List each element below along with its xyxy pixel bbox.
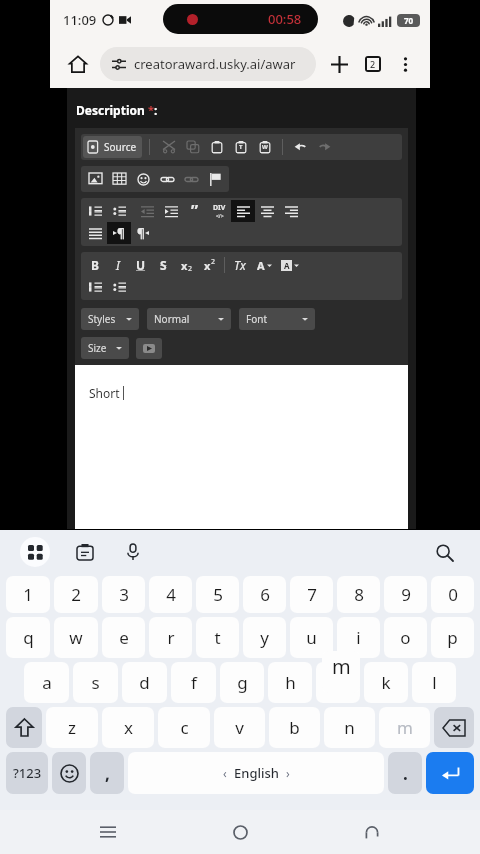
button[interactable]: Align left xyxy=(231,200,255,222)
button[interactable]: Emoji xyxy=(131,168,155,190)
button[interactable]: 0 xyxy=(431,576,474,613)
button[interactable]: x xyxy=(102,707,154,748)
button[interactable]: a xyxy=(24,662,69,703)
button[interactable]: Period xyxy=(388,752,422,794)
button[interactable]: 4 xyxy=(149,576,192,613)
button[interactable]: r xyxy=(149,617,192,658)
button[interactable]: Text color xyxy=(251,254,277,276)
button[interactable]: o xyxy=(384,617,427,658)
button[interactable]: Copy xyxy=(181,136,205,158)
button[interactable]: i xyxy=(337,617,380,658)
button[interactable]: 9 xyxy=(384,576,427,613)
button[interactable]: s xyxy=(73,662,118,703)
button[interactable]: Recording 00:58 xyxy=(163,4,318,34)
button[interactable]: Home xyxy=(60,46,96,82)
button[interactable]: Undo xyxy=(288,136,312,158)
button[interactable]: Align right xyxy=(279,200,303,222)
button[interactable]: Block quote xyxy=(183,200,207,222)
button[interactable]: Tabs: 2 xyxy=(356,47,390,81)
button[interactable]: Increase indent xyxy=(159,200,183,222)
button[interactable]: B xyxy=(83,254,106,276)
button[interactable]: ‹ xyxy=(128,752,384,794)
button[interactable]: Back xyxy=(348,810,396,854)
button[interactable]: Numbered list xyxy=(83,200,107,222)
button[interactable]: Font xyxy=(239,308,315,330)
button[interactable]: 5 xyxy=(196,576,239,613)
button[interactable]: e xyxy=(102,617,145,658)
button[interactable]: f xyxy=(171,662,216,703)
button[interactable]: Tx xyxy=(228,254,251,276)
button[interactable]: Subscript xyxy=(175,254,198,276)
button[interactable]: w xyxy=(54,617,98,658)
button[interactable]: Image xyxy=(83,168,107,190)
button[interactable]: Right to left xyxy=(131,222,155,244)
button[interactable]: n xyxy=(324,707,375,748)
button[interactable]: Cut xyxy=(157,136,181,158)
button[interactable]: Voice input xyxy=(120,539,146,565)
button[interactable]: k xyxy=(364,662,408,703)
button[interactable]: h xyxy=(268,662,312,703)
button[interactable]: 6 xyxy=(243,576,286,613)
button[interactable]: v xyxy=(214,707,265,748)
button[interactable]: t xyxy=(196,617,239,658)
button[interactable]: Paste xyxy=(205,136,229,158)
button[interactable]: Search xyxy=(430,538,458,566)
button[interactable]: Normal xyxy=(147,308,231,330)
button[interactable]: Decrease indent xyxy=(135,200,159,222)
button[interactable]: j xyxy=(316,662,360,703)
button[interactable]: Enter xyxy=(426,752,474,794)
button[interactable]: c xyxy=(158,707,210,748)
button[interactable]: Bulleted list xyxy=(107,200,131,222)
button[interactable]: m xyxy=(379,707,430,748)
button[interactable]: Redo xyxy=(312,136,336,158)
button[interactable]: 1 xyxy=(6,576,50,613)
button[interactable]: b xyxy=(269,707,320,748)
button[interactable]: Emoji xyxy=(52,752,86,794)
button[interactable]: U xyxy=(129,254,152,276)
button[interactable]: Align center xyxy=(255,200,279,222)
button[interactable]: Table xyxy=(107,168,131,190)
button[interactable]: Justify xyxy=(83,222,107,244)
button[interactable]: z xyxy=(46,707,98,748)
button[interactable]: 2 xyxy=(54,576,98,613)
button[interactable]: Recents xyxy=(84,810,132,854)
button[interactable]: I xyxy=(106,254,129,276)
button[interactable]: Comma xyxy=(90,752,124,794)
button[interactable]: Anchor xyxy=(203,168,227,190)
staticText: q xyxy=(23,626,34,649)
button[interactable]: u xyxy=(290,617,333,658)
button[interactable]: Link xyxy=(155,168,179,190)
button[interactable]: Div container xyxy=(207,200,231,222)
button[interactable]: creatoraward.usky.ai/awar xyxy=(100,47,316,81)
button[interactable]: Media xyxy=(136,338,162,359)
button[interactable]: p xyxy=(431,617,474,658)
button[interactable]: Background color xyxy=(277,254,303,276)
button[interactable]: Unlink xyxy=(179,168,203,190)
button[interactable]: q xyxy=(6,617,50,658)
button[interactable]: Keyboard modes xyxy=(20,537,50,567)
button[interactable]: Paste as text xyxy=(229,136,253,158)
button[interactable]: Backspace xyxy=(434,707,474,748)
button[interactable]: S xyxy=(152,254,175,276)
button[interactable]: Symbols xyxy=(6,752,48,794)
button[interactable]: Numbered list xyxy=(83,276,107,298)
button[interactable]: Source xyxy=(83,136,142,158)
button[interactable]: d xyxy=(122,662,167,703)
button[interactable]: 8 xyxy=(337,576,380,613)
button[interactable]: Home xyxy=(216,810,264,854)
button[interactable]: Shift xyxy=(6,707,42,748)
button[interactable]: Left to right xyxy=(107,222,131,244)
button[interactable]: Superscript xyxy=(198,254,221,276)
button[interactable]: Clipboard xyxy=(72,539,98,565)
button[interactable]: l xyxy=(412,662,456,703)
button[interactable]: 7 xyxy=(290,576,333,613)
button[interactable]: Size xyxy=(81,337,129,359)
button[interactable]: Bulleted list xyxy=(107,276,131,298)
button[interactable]: 3 xyxy=(102,576,145,613)
button[interactable]: Styles xyxy=(81,308,139,330)
button[interactable]: Paste from Word xyxy=(253,136,277,158)
button[interactable]: More options xyxy=(390,49,420,79)
button[interactable]: New tab xyxy=(322,47,356,81)
button[interactable]: g xyxy=(220,662,264,703)
button[interactable]: y xyxy=(243,617,286,658)
